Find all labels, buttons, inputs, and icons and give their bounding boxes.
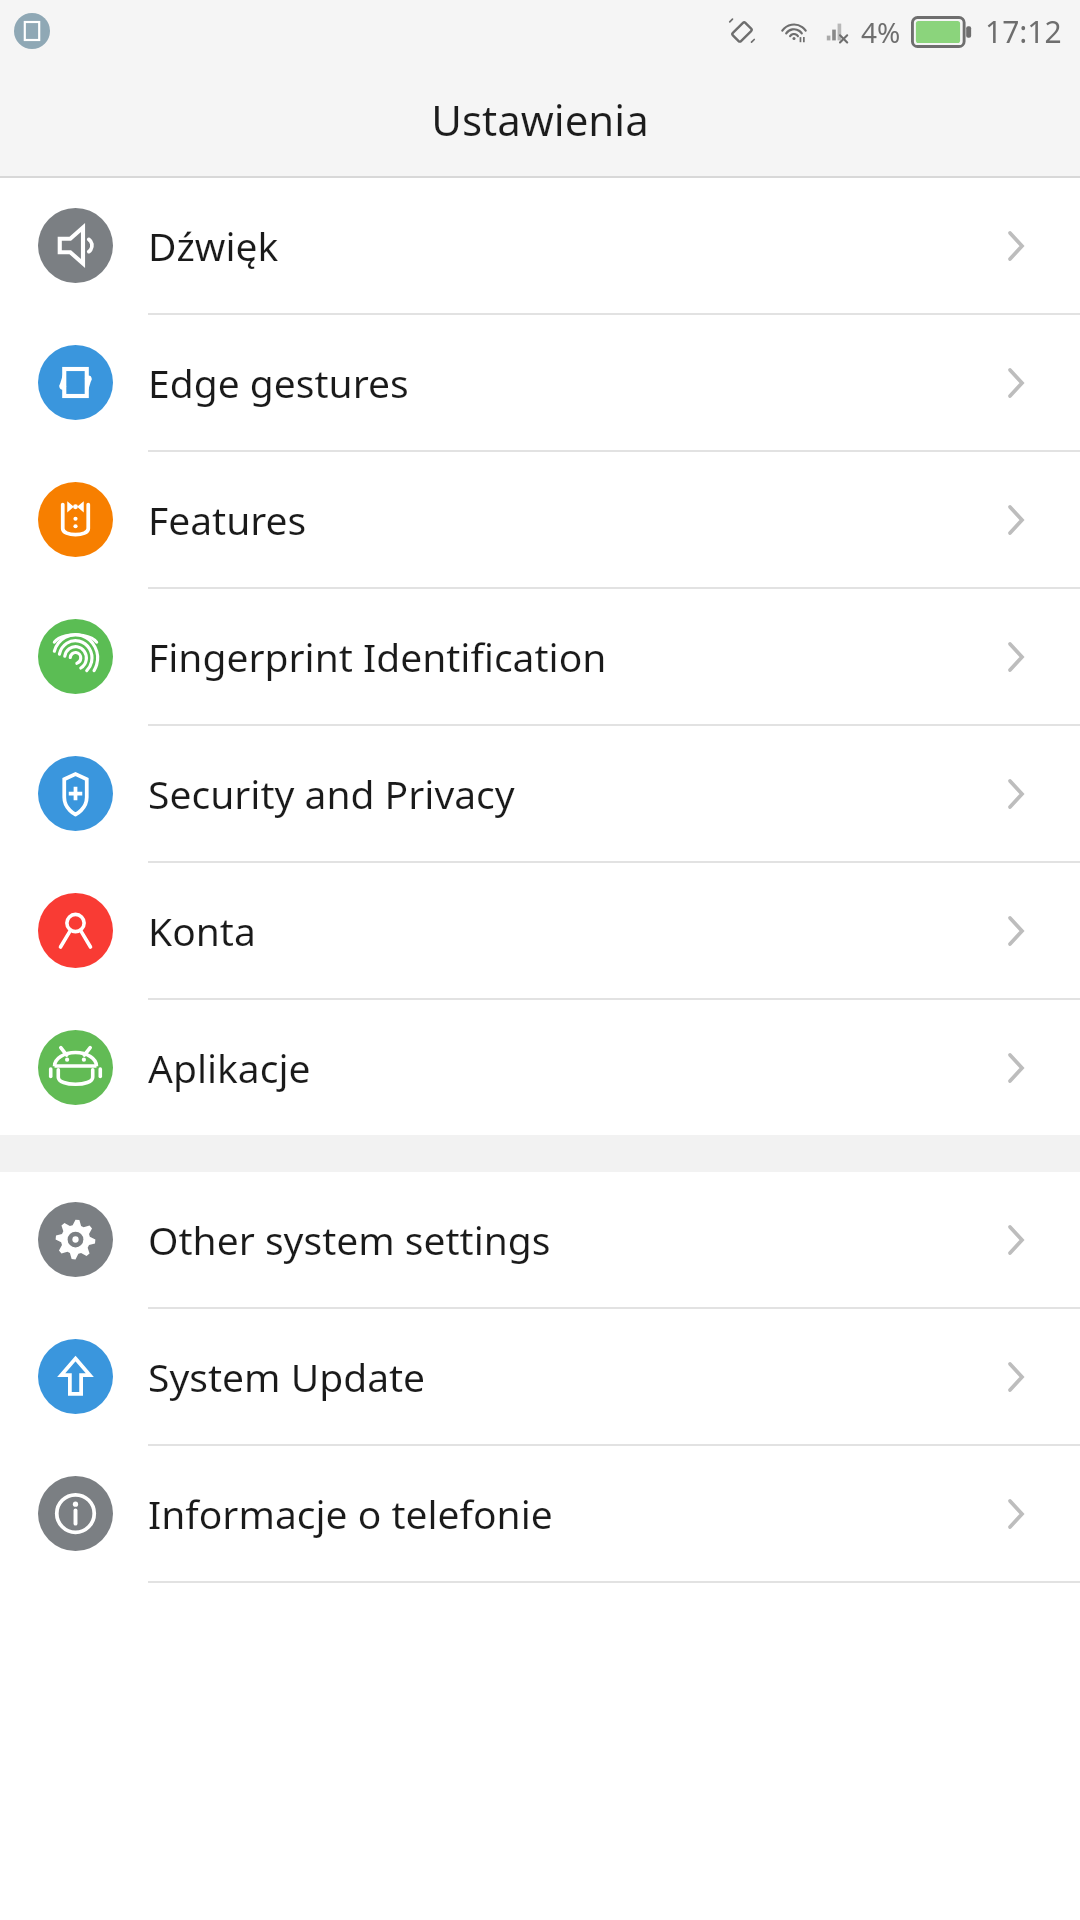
staticText: Ustawienia xyxy=(431,91,649,148)
staticText: Fingerprint Identification xyxy=(148,630,994,683)
staticText: Security and Privacy xyxy=(148,767,994,820)
staticText: Aplikacje xyxy=(148,1041,994,1094)
staticText: Edge gestures xyxy=(148,356,994,409)
button[interactable]: Other system settings xyxy=(0,1172,1080,1307)
staticText: 4% xyxy=(861,13,901,51)
button[interactable]: System Update xyxy=(0,1309,1080,1444)
staticText: 17:12 xyxy=(985,11,1062,52)
button[interactable]: Informacje o telefonie xyxy=(0,1446,1080,1581)
button[interactable]: Edge gestures xyxy=(0,315,1080,450)
button[interactable]: Features xyxy=(0,452,1080,587)
button[interactable]: Dźwięk xyxy=(0,178,1080,313)
button[interactable]: Aplikacje xyxy=(0,1000,1080,1135)
staticText: Other system settings xyxy=(148,1213,994,1266)
staticText: Dźwięk xyxy=(148,219,994,272)
button[interactable]: Security and Privacy xyxy=(0,726,1080,861)
staticText: Informacje o telefonie xyxy=(148,1487,994,1540)
staticText: System Update xyxy=(148,1350,994,1403)
button[interactable]: Fingerprint Identification xyxy=(0,589,1080,724)
button[interactable]: Konta xyxy=(0,863,1080,998)
staticText: Konta xyxy=(148,904,994,957)
staticText: Features xyxy=(148,493,994,546)
